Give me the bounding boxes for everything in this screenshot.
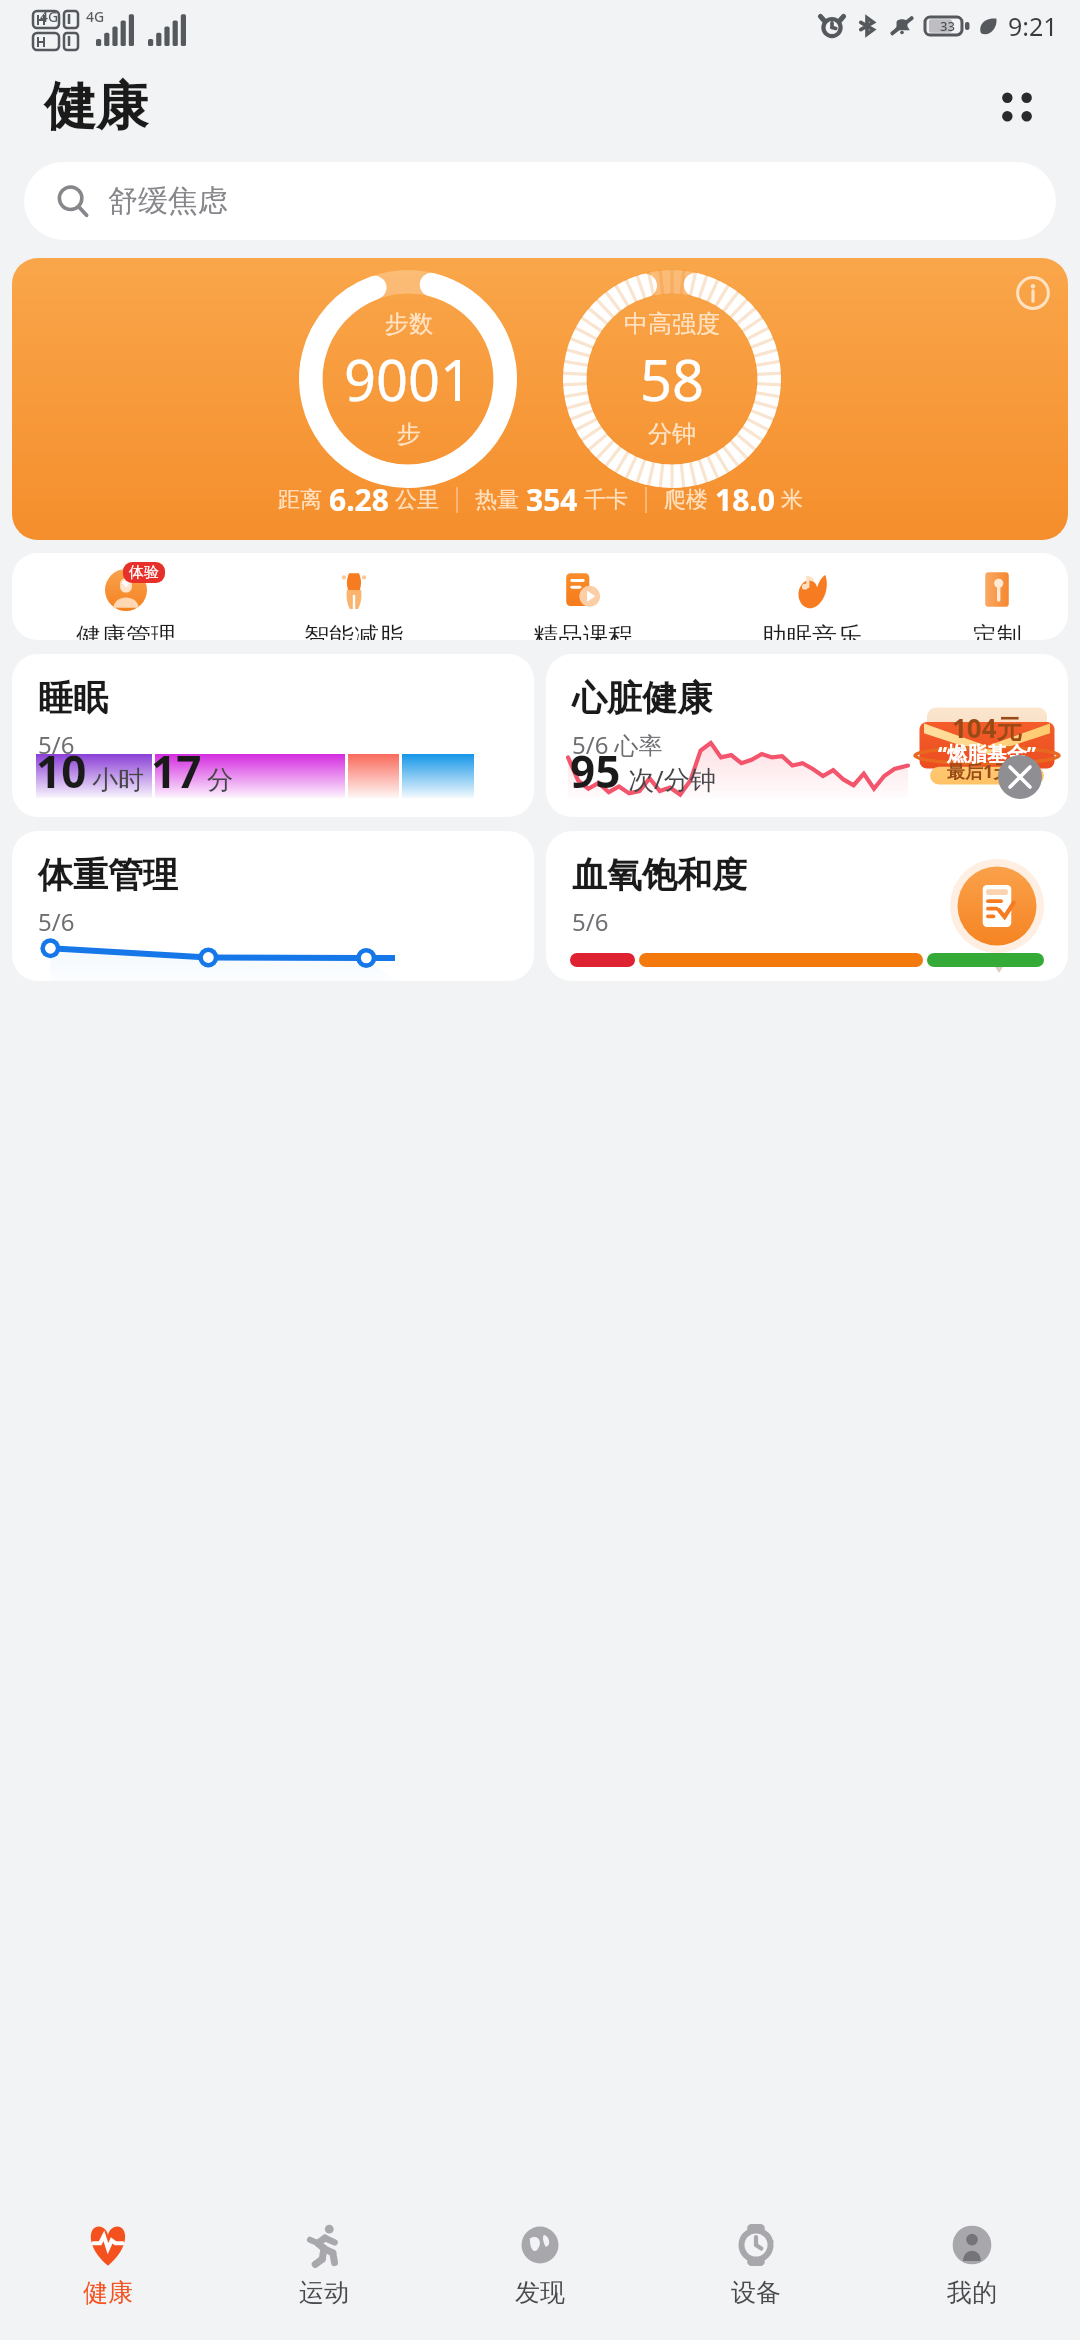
- button[interactable]: 舒缓焦虑: [24, 162, 1056, 240]
- staticText: 定制: [972, 621, 1022, 640]
- button[interactable]: 运动: [216, 2188, 432, 2340]
- staticText: 9:21: [1008, 9, 1058, 43]
- button[interactable]: Close ad: [998, 755, 1042, 799]
- staticText: 爬楼: [664, 486, 708, 514]
- staticText: 我的: [947, 2277, 997, 2308]
- staticText: 中高强度: [624, 309, 720, 339]
- button[interactable]: 104元: [912, 706, 1062, 786]
- staticText: 33: [940, 17, 955, 35]
- staticText: 18.0: [715, 479, 775, 520]
- staticText: 小时: [92, 764, 144, 797]
- staticText: 5/6: [38, 728, 75, 761]
- staticText: 最后1天 »: [947, 759, 1028, 784]
- staticText: 发现: [515, 2277, 565, 2308]
- staticText: 354: [526, 479, 578, 520]
- staticText: 体重管理: [38, 853, 178, 897]
- staticText: 千卡: [584, 486, 628, 514]
- staticText: 健康: [44, 74, 148, 140]
- staticText: 5/6: [572, 905, 609, 938]
- staticText: 4G: [86, 7, 105, 26]
- staticText: 6.28: [329, 479, 389, 520]
- staticText: 分钟: [648, 419, 696, 449]
- staticText: 5/6 心率: [572, 728, 663, 761]
- staticText: 血氧饱和度: [572, 853, 747, 897]
- staticText: 智能减脂: [304, 621, 404, 640]
- button[interactable]: 心脏健康: [546, 654, 1068, 817]
- staticText: 睡眠: [38, 676, 108, 720]
- button[interactable]: 发现: [432, 2188, 648, 2340]
- staticText: 58: [640, 341, 705, 417]
- staticText: 助眠音乐: [762, 621, 862, 640]
- button[interactable]: 定制: [926, 567, 1068, 640]
- staticText: 精品课程: [533, 621, 633, 640]
- staticText: 米: [781, 486, 803, 514]
- button[interactable]: 血氧饱和度: [546, 831, 1068, 981]
- staticText: 健康: [83, 2277, 133, 2308]
- button[interactable]: 体验: [12, 567, 240, 640]
- button[interactable]: More options: [980, 70, 1054, 144]
- staticText: 体验: [129, 563, 159, 582]
- staticText: 分: [207, 764, 233, 797]
- staticText: 17: [151, 741, 202, 801]
- button[interactable]: 睡眠: [12, 654, 534, 817]
- button[interactable]: Info: [12, 258, 1068, 540]
- staticText: 104元: [952, 710, 1023, 746]
- button[interactable]: 健康: [0, 2188, 216, 2340]
- staticText: “燃脂基金”: [938, 740, 1036, 767]
- button[interactable]: 助眠音乐: [697, 567, 926, 640]
- staticText: 设备: [731, 2277, 781, 2308]
- staticText: 5/6: [38, 905, 75, 938]
- staticText: 10: [36, 741, 87, 801]
- button[interactable]: 精品课程: [468, 567, 697, 640]
- staticText: 步数: [385, 309, 433, 339]
- button[interactable]: Info: [1010, 270, 1056, 316]
- staticText: 4G: [40, 7, 59, 26]
- staticText: 运动: [299, 2277, 349, 2308]
- staticText: 健康管理: [76, 621, 176, 640]
- button[interactable]: 智能减脂: [240, 567, 468, 640]
- staticText: 9001: [344, 341, 473, 417]
- button[interactable]: 体重管理: [12, 831, 534, 981]
- staticText: 热量: [475, 486, 519, 514]
- staticText: 公里: [395, 486, 439, 514]
- staticText: 次/分钟: [628, 761, 716, 797]
- staticText: 95: [570, 741, 621, 801]
- button[interactable]: 我的: [864, 2188, 1080, 2340]
- staticText: 舒缓焦虑: [108, 182, 228, 220]
- staticText: 心脏健康: [572, 676, 712, 720]
- staticText: 距离: [278, 486, 322, 514]
- staticText: 步: [397, 419, 421, 449]
- button[interactable]: 设备: [648, 2188, 864, 2340]
